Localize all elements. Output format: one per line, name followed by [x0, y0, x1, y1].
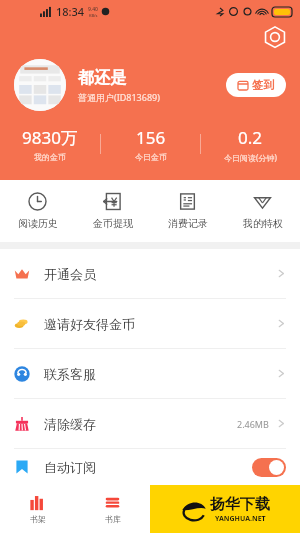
- staticText: 今日金币: [135, 152, 167, 162]
- staticText: 156: [136, 126, 166, 149]
- button[interactable]: 签到: [226, 73, 286, 97]
- staticText: 书库: [105, 514, 121, 524]
- staticText: 阅读历史: [18, 217, 58, 230]
- button[interactable]: 书库: [75, 485, 150, 533]
- button[interactable]: 自动订阅: [0, 449, 300, 485]
- staticText: 9830万: [22, 126, 78, 149]
- button[interactable]: 书架: [0, 485, 75, 533]
- staticText: 0.2: [238, 126, 263, 149]
- staticText: 清除缓存: [44, 416, 96, 432]
- button[interactable]: [252, 458, 286, 477]
- staticText: 书架: [30, 514, 46, 524]
- staticText: 普通用户(ID813689): [78, 91, 160, 103]
- staticText: 签到: [252, 78, 274, 92]
- staticText: 金币提现: [93, 217, 133, 230]
- button[interactable]: 消费记录: [150, 180, 225, 242]
- staticText: 联系客服: [44, 366, 96, 382]
- staticText: 我的金币: [34, 152, 66, 162]
- button[interactable]: 联系客服: [0, 349, 300, 398]
- staticText: 扬华下载: [210, 495, 270, 514]
- button[interactable]: 9830万: [0, 126, 100, 162]
- button[interactable]: 清除缓存: [0, 399, 300, 448]
- button[interactable]: [14, 59, 66, 111]
- button[interactable]: 我的特权: [225, 180, 300, 242]
- button[interactable]: 开通会员: [0, 249, 300, 298]
- staticText: 开通会员: [44, 266, 96, 282]
- button[interactable]: 0.2: [201, 126, 300, 163]
- staticText: 2.46MB: [237, 418, 269, 430]
- staticText: 今日阅读(分钟): [224, 152, 277, 163]
- staticText: 我的特权: [243, 217, 283, 230]
- staticText: KB/s: [89, 13, 98, 18]
- button[interactable]: 金币提现: [75, 180, 150, 242]
- staticText: 邀请好友得金币: [44, 316, 135, 332]
- button[interactable]: Scan: [264, 26, 286, 48]
- staticText: YANGHUA.NET: [215, 514, 266, 524]
- button[interactable]: 邀请好友得金币: [0, 299, 300, 348]
- staticText: 消费记录: [168, 217, 208, 230]
- button[interactable]: 156: [101, 126, 200, 162]
- staticText: 都还是: [78, 68, 126, 88]
- staticText: 9.40: [88, 6, 98, 13]
- staticText: 18:34: [56, 4, 85, 19]
- button[interactable]: 阅读历史: [0, 180, 75, 242]
- staticText: 自动订阅: [44, 459, 96, 475]
